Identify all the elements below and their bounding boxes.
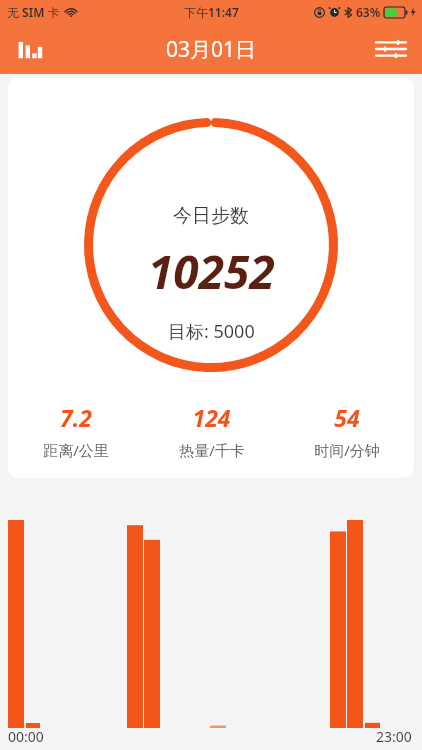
staticText: 时间/分钟 — [314, 440, 380, 460]
button[interactable]: Statistics — [8, 27, 52, 71]
staticText: 无 SIM 卡 — [7, 4, 60, 20]
button[interactable]: 54 — [279, 402, 414, 460]
staticText: 00:00 — [8, 727, 44, 746]
staticText: 目标: 5000 — [168, 319, 255, 344]
staticText: 今日步数 — [173, 204, 249, 228]
button[interactable]: 124 — [144, 402, 279, 460]
staticText: 03月01日 — [166, 35, 257, 64]
button[interactable]: Settings — [368, 26, 414, 72]
button[interactable]: 7.2 — [8, 402, 144, 460]
staticText: 10252 — [148, 240, 275, 303]
staticText: 距离/公里 — [43, 440, 109, 460]
staticText: 7.2 — [60, 402, 92, 433]
staticText: 63% — [356, 4, 381, 20]
staticText: 124 — [192, 402, 231, 433]
staticText: 23:00 — [376, 727, 412, 746]
staticText: 下午11:47 — [184, 4, 239, 20]
staticText: 54 — [334, 402, 360, 433]
staticText: 热量/千卡 — [179, 440, 245, 460]
